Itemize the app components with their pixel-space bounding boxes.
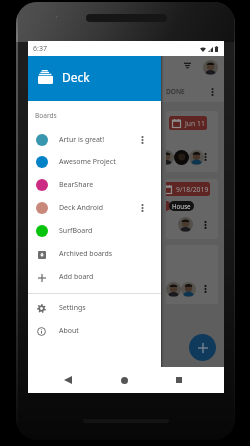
staticText: Jun 11: [185, 119, 205, 128]
button[interactable]: About: [28, 320, 161, 342]
staticText: SurfBoard: [59, 226, 93, 236]
staticText: DONE: [166, 87, 185, 96]
staticText: 9/18/2019: [176, 185, 209, 194]
staticText: 6:37: [33, 44, 47, 54]
button[interactable]: Artur is great!: [28, 129, 161, 151]
button[interactable]: Settings: [28, 297, 161, 319]
staticText: BearShare: [59, 180, 94, 190]
button[interactable]: [166, 245, 218, 304]
button[interactable]: SurfBoard: [28, 220, 161, 242]
button[interactable]: Board menu: [136, 202, 148, 214]
staticText: Archived boards: [59, 249, 113, 259]
staticText: Boards: [35, 111, 57, 120]
button[interactable]: Board menu: [136, 134, 148, 146]
button[interactable]: BearShare: [28, 174, 161, 196]
staticText: Deck: [62, 69, 90, 85]
button[interactable]: More options: [207, 86, 218, 97]
staticText: House: [172, 202, 191, 210]
button[interactable]: Home: [116, 372, 132, 388]
button[interactable]: Jun 11: [166, 111, 218, 172]
button[interactable]: Archived boards: [28, 243, 161, 265]
button[interactable]: Filter: [182, 60, 193, 71]
button[interactable]: Account: [203, 60, 218, 75]
button[interactable]: DONE: [166, 81, 188, 102]
staticText: Add board: [59, 272, 94, 282]
staticText: Artur is great!: [59, 135, 105, 145]
button[interactable]: Add board: [28, 266, 161, 288]
button[interactable]: Deck Android: [28, 197, 161, 219]
staticText: About: [59, 326, 79, 336]
button[interactable]: Add card: [189, 334, 216, 361]
staticText: Awesome Project: [59, 157, 116, 167]
button[interactable]: Recents: [171, 372, 187, 388]
staticText: Settings: [59, 303, 86, 313]
button[interactable]: 9/18/2019: [166, 179, 218, 239]
button[interactable]: Back: [60, 372, 76, 388]
staticText: Deck Android: [59, 203, 104, 213]
button[interactable]: Awesome Project: [28, 151, 161, 173]
